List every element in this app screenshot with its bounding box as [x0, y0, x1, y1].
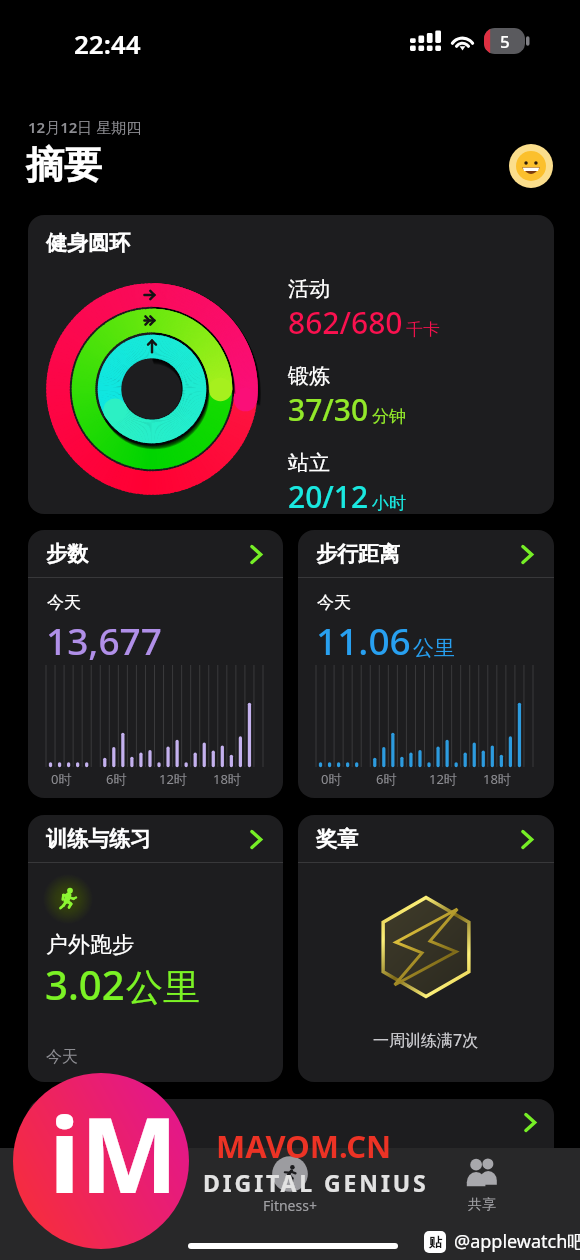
- staticText: 站立: [288, 450, 330, 476]
- staticText: 12月12日 星期四: [28, 117, 142, 137]
- staticText: 户外跑步: [46, 931, 134, 959]
- button[interactable]: 奖章: [512, 825, 540, 853]
- staticText: 18时: [483, 770, 511, 788]
- staticText: 3.02: [45, 957, 125, 1011]
- staticText: 摘要: [26, 141, 102, 189]
- button[interactable]: 步数: [241, 540, 269, 568]
- staticText: 0时: [321, 770, 342, 788]
- staticText: 摘要: [83, 1196, 111, 1214]
- staticText: 12时: [429, 770, 457, 788]
- staticText: 小时: [372, 493, 406, 514]
- staticText: 共享: [468, 1196, 496, 1214]
- staticText: 千卡: [406, 319, 440, 340]
- button[interactable]: Profile: [509, 144, 553, 188]
- staticText: 11.06: [316, 615, 411, 665]
- staticText: 6时: [376, 770, 397, 788]
- staticText: 训练与练习: [46, 826, 151, 852]
- staticText: Fitness+: [263, 1196, 317, 1215]
- staticText: 分钟: [372, 406, 406, 427]
- button[interactable]: 训练与练习: [241, 825, 269, 853]
- staticText: 18时: [213, 770, 241, 788]
- staticText: 5: [500, 30, 510, 53]
- staticText: 步行距离: [316, 541, 400, 567]
- staticText: 20/12: [288, 476, 369, 514]
- staticText: 13,677: [46, 615, 162, 665]
- staticText: MAVOM.CN: [216, 1125, 392, 1167]
- button[interactable]: [28, 1099, 554, 1189]
- button[interactable]: 奖章: [298, 815, 554, 1082]
- button[interactable]: 共享: [427, 1155, 537, 1214]
- button[interactable]: 健身圆环: [28, 215, 554, 514]
- button[interactable]: 步行距离: [298, 530, 554, 798]
- staticText: 步数: [46, 541, 88, 567]
- button[interactable]: 步行距离: [512, 540, 540, 568]
- staticText: 奖章: [316, 826, 358, 852]
- staticText: 今天: [46, 1047, 78, 1067]
- staticText: 37/30: [288, 389, 369, 430]
- staticText: iM: [49, 1082, 179, 1224]
- staticText: 健身圆环: [46, 230, 130, 256]
- staticText: 公里: [413, 635, 455, 661]
- staticText: 活动: [288, 276, 330, 302]
- staticText: 公里: [126, 964, 200, 1011]
- staticText: 862/680: [288, 302, 403, 343]
- button[interactable]: Fitness+: [235, 1155, 345, 1215]
- staticText: 6时: [106, 770, 127, 788]
- staticText: 今天: [317, 592, 351, 613]
- staticText: 一周训练满7次: [373, 1029, 479, 1051]
- button[interactable]: 摘要: [42, 1155, 152, 1214]
- staticText: 贴: [429, 1234, 442, 1250]
- staticText: DIGITAL GENIUS: [203, 1167, 429, 1198]
- staticText: 12时: [159, 770, 187, 788]
- staticText: 今天: [47, 592, 81, 613]
- button[interactable]: 训练与练习: [28, 815, 283, 1082]
- staticText: 锻炼: [288, 363, 330, 389]
- staticText: 22:44: [74, 26, 141, 61]
- button[interactable]: 步数: [28, 530, 283, 798]
- staticText: 0时: [51, 770, 72, 788]
- staticText: @applewatch吧: [454, 1229, 580, 1254]
